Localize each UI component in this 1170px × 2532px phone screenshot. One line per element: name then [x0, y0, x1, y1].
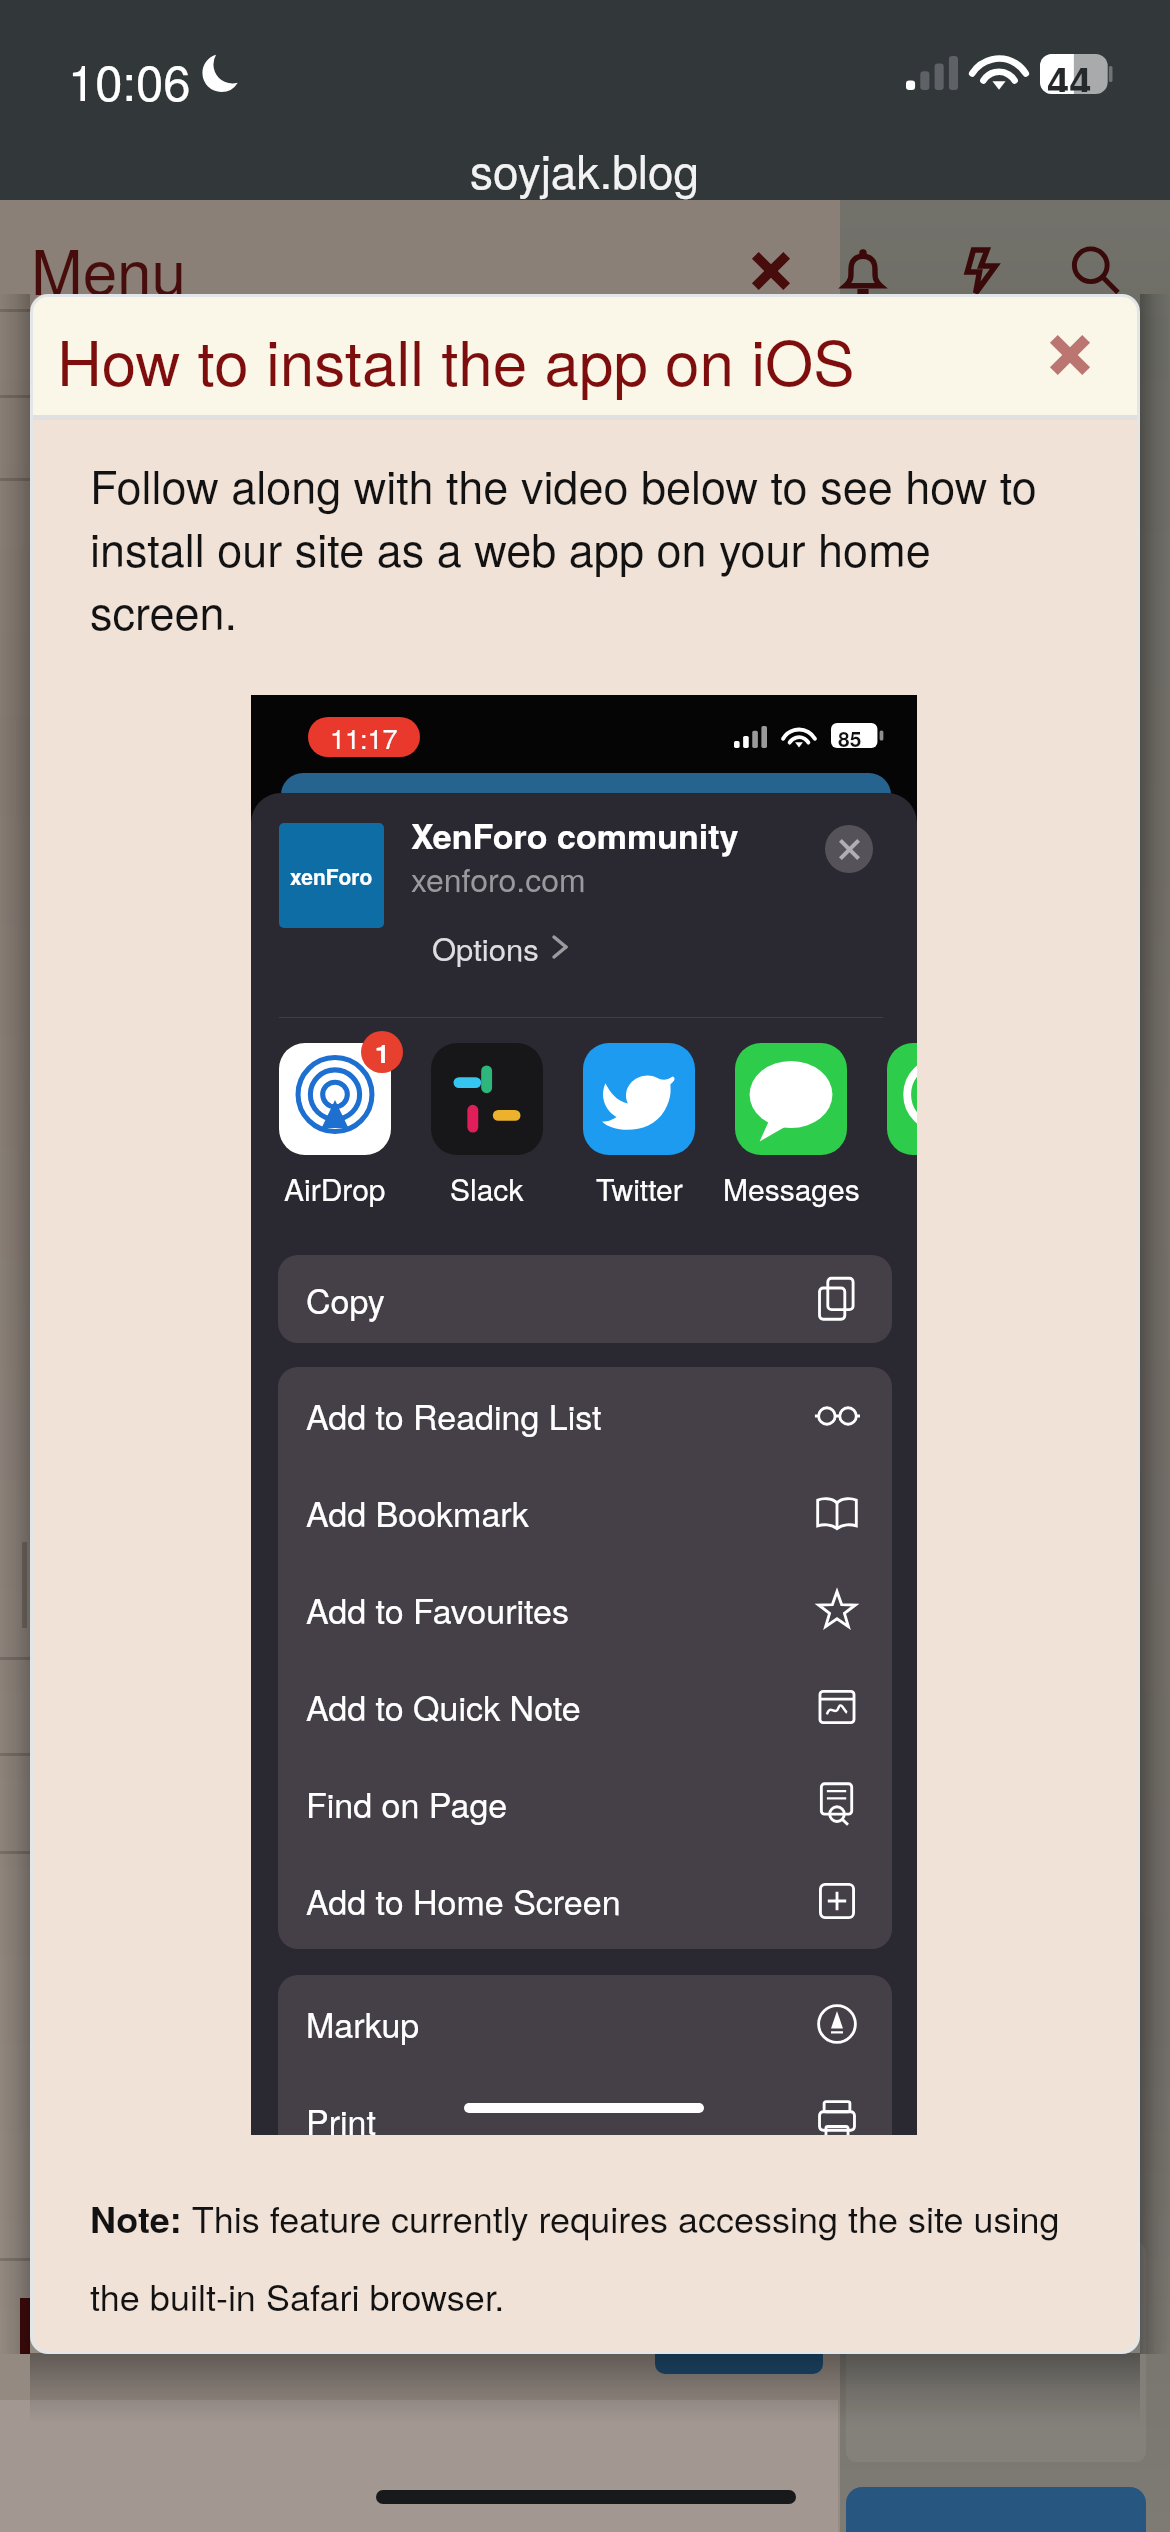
- staticText: How to install the app on iOS: [57, 315, 855, 404]
- staticText: Messages: [723, 1167, 860, 1210]
- staticText: Menu: [31, 224, 187, 313]
- staticText: AirDrop: [284, 1167, 386, 1210]
- staticText: xenForo: [290, 861, 373, 891]
- staticText: xenforo.com: [411, 855, 586, 901]
- staticText: 44: [1047, 52, 1092, 92]
- staticText: Add to Quick Note: [306, 1682, 581, 1731]
- staticText: Copy: [306, 1275, 385, 1324]
- staticText: Add to Favourites: [306, 1585, 569, 1634]
- button[interactable]: Close menu: [727, 227, 815, 315]
- button[interactable]: What's new: [937, 227, 1025, 315]
- staticText: 85: [838, 723, 862, 748]
- staticText: Options: [432, 925, 539, 969]
- button[interactable]: Notifications: [819, 227, 907, 315]
- button[interactable]: Close dialog: [1028, 313, 1112, 397]
- staticText: 11:17: [330, 718, 398, 757]
- staticText: soyjak.blog: [470, 136, 700, 202]
- staticText: Add Bookmark: [306, 1488, 529, 1537]
- button[interactable]: Search: [1053, 227, 1141, 315]
- staticText: Add to Reading List: [306, 1391, 602, 1440]
- staticText: Find on Page: [306, 1779, 508, 1828]
- staticText: Twitter: [596, 1167, 683, 1210]
- staticText: Slack: [450, 1167, 524, 1210]
- staticText: 10:06: [68, 45, 191, 115]
- staticText: Markup: [306, 1999, 420, 2048]
- staticText: Print: [306, 2096, 376, 2135]
- staticText: Note: This feature currently requires ac…: [90, 2192, 1100, 2321]
- staticText: 1: [375, 1034, 390, 1071]
- staticText: Follow along with the video below to see…: [90, 452, 1080, 642]
- staticText: XenForo community: [411, 811, 739, 860]
- staticText: Add to Home Screen: [306, 1876, 621, 1925]
